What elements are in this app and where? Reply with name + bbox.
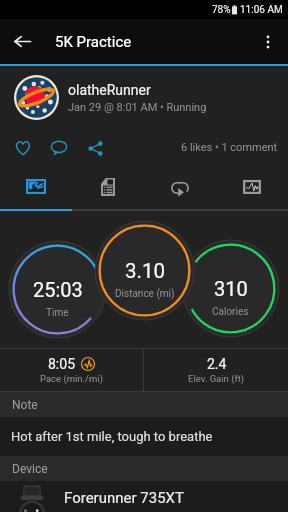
staticText: 25:03	[33, 278, 83, 301]
staticText: Elev. Gain (ft)	[188, 373, 245, 384]
button[interactable]: 2.4	[144, 349, 288, 391]
staticText: 78%	[212, 4, 231, 16]
staticText: 3.10	[125, 259, 165, 283]
staticText: 11:06 AM	[240, 4, 283, 16]
button[interactable]: Navigate up	[0, 19, 45, 64]
button[interactable]: More options	[248, 19, 288, 64]
staticText: Hot after 1st mile, tough to breathe	[11, 429, 213, 444]
staticText: 8:05	[48, 356, 75, 372]
staticText: Pace (min./mi)	[40, 373, 103, 384]
staticText: 2.4	[207, 356, 227, 372]
staticText: 5K Practice	[55, 33, 132, 51]
staticText: Distance (mi)	[115, 288, 175, 300]
staticText: 6 likes • 1 comment	[181, 141, 278, 154]
staticText: 310	[214, 277, 248, 300]
button[interactable]: Hot after 1st mile, tough to breathe	[0, 417, 288, 456]
button[interactable]: Map	[0, 166, 72, 209]
staticText: Calories	[212, 306, 249, 318]
button[interactable]: Comment	[44, 133, 74, 163]
button[interactable]: 8:05	[0, 349, 143, 391]
button[interactable]: Laps	[144, 166, 216, 209]
staticText: Jan 29 @ 8:01 AM • Running	[68, 101, 207, 114]
staticText: Time	[46, 307, 69, 319]
staticText: Note	[12, 398, 38, 412]
staticText: Forerunner 735XT	[64, 489, 184, 507]
button[interactable]: Charts	[216, 166, 288, 209]
staticText: olatheRunner	[68, 82, 151, 98]
staticText: Device	[12, 462, 48, 476]
button[interactable]: Details	[72, 166, 144, 209]
button[interactable]: Forerunner 735XT	[0, 481, 288, 512]
button[interactable]: Like	[8, 133, 38, 163]
button[interactable]: Share	[80, 133, 110, 163]
